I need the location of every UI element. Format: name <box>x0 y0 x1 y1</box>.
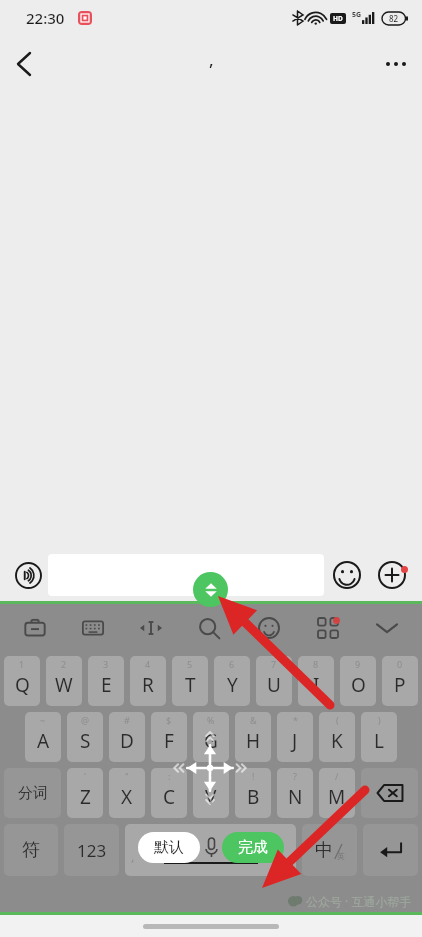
button[interactable]: & <box>235 712 271 762</box>
button[interactable]: " <box>109 768 145 818</box>
button[interactable]: ; <box>193 768 229 818</box>
staticText: M <box>328 784 346 810</box>
staticText: G <box>204 728 218 754</box>
button[interactable]: # <box>109 712 145 762</box>
staticText: / <box>335 770 339 782</box>
staticText: N <box>288 784 303 810</box>
staticText: $ <box>166 714 172 726</box>
staticText: T <box>185 672 196 698</box>
staticText: X <box>121 784 133 810</box>
button[interactable]: Resize keyboard <box>193 572 228 607</box>
button[interactable]: ) <box>361 712 397 762</box>
staticText: 7 <box>271 658 277 670</box>
button[interactable]: 符 <box>4 824 58 876</box>
button[interactable]: Switch Chinese English <box>302 824 357 876</box>
staticText: W <box>55 672 73 698</box>
button[interactable]: ' <box>67 768 103 818</box>
staticText: F <box>164 728 174 754</box>
button[interactable]: More functions <box>370 553 414 597</box>
staticText: B <box>247 784 260 810</box>
staticText: 5 <box>187 658 193 670</box>
button[interactable]: 2 <box>46 656 82 706</box>
button[interactable]: Back <box>0 40 48 88</box>
staticText: 英 <box>337 851 345 861</box>
button[interactable]: 4 <box>130 656 166 706</box>
staticText: 符 <box>22 839 40 862</box>
staticText: " <box>125 770 129 782</box>
button[interactable]: More options <box>370 38 422 90</box>
button[interactable]: Space <box>125 824 296 876</box>
button[interactable]: 123 <box>64 824 119 876</box>
staticText: , <box>131 847 135 865</box>
staticText: O <box>351 672 366 698</box>
button[interactable]: 6 <box>214 656 250 706</box>
staticText: Q <box>15 672 30 698</box>
button[interactable]: Collapse <box>357 604 416 652</box>
staticText: U <box>267 672 281 698</box>
button[interactable]: 8 <box>298 656 334 706</box>
button[interactable]: 0 <box>382 656 418 706</box>
staticText: ' <box>84 770 87 782</box>
button[interactable]: Enter <box>363 824 418 876</box>
staticText: A <box>37 728 50 754</box>
button[interactable]: $ <box>151 712 187 762</box>
staticText: P <box>394 672 406 698</box>
staticText: 22:30 <box>26 8 65 28</box>
staticText: S <box>80 728 91 754</box>
staticText: 6 <box>229 658 235 670</box>
button[interactable]: @ <box>67 712 103 762</box>
staticText: ~ <box>40 714 46 726</box>
button[interactable]: % <box>193 712 229 762</box>
button[interactable]: 分词 <box>4 768 61 818</box>
button[interactable]: 完成 <box>222 832 284 863</box>
button[interactable]: : <box>151 768 187 818</box>
button[interactable]: 9 <box>340 656 376 706</box>
button[interactable]: ! <box>235 768 271 818</box>
staticText: Z <box>80 784 91 810</box>
staticText: * <box>293 714 298 726</box>
button[interactable]: 1 <box>4 656 40 706</box>
staticText: # <box>124 714 130 726</box>
button[interactable]: Move cursor <box>122 604 180 652</box>
staticText: 分词 <box>18 784 48 803</box>
staticText: V <box>205 784 217 810</box>
button[interactable]: ? <box>277 768 313 818</box>
button[interactable]: ~ <box>25 712 61 762</box>
staticText: 。 <box>279 848 292 864</box>
button[interactable]: 5 <box>172 656 208 706</box>
button[interactable]: Search <box>180 604 239 652</box>
staticText: ( <box>336 714 339 726</box>
staticText: 123 <box>77 839 107 862</box>
button[interactable]: Keyboard layout <box>64 604 122 652</box>
button[interactable]: 3 <box>88 656 124 706</box>
staticText: 3 <box>103 658 109 670</box>
staticText: E <box>101 672 112 698</box>
button[interactable]: Stickers <box>239 604 298 652</box>
button[interactable]: Clipboard <box>6 604 64 652</box>
staticText: : <box>168 770 171 782</box>
staticText: 默认 <box>154 838 184 857</box>
button[interactable]: Emoji <box>324 552 370 598</box>
staticText: 9 <box>355 658 361 670</box>
staticText: & <box>250 714 257 726</box>
staticText: ) <box>378 714 381 726</box>
staticText: 5G <box>352 10 362 20</box>
button[interactable] <box>48 554 324 596</box>
staticText: L <box>374 728 384 754</box>
staticText: J <box>292 728 298 754</box>
staticText: R <box>142 672 154 698</box>
staticText: ! <box>252 770 255 782</box>
staticText: @ <box>81 714 90 726</box>
staticText: % <box>207 714 215 726</box>
button[interactable]: / <box>319 768 355 818</box>
button[interactable]: More tools <box>298 604 357 652</box>
button[interactable]: 7 <box>256 656 292 706</box>
button[interactable]: Backspace <box>361 768 418 818</box>
button[interactable]: ( <box>319 712 355 762</box>
staticText: ; <box>210 770 213 782</box>
staticText: 0 <box>397 658 403 670</box>
staticText: Y <box>227 672 238 698</box>
button[interactable]: * <box>277 712 313 762</box>
button[interactable]: Voice input <box>8 555 48 595</box>
button[interactable]: 默认 <box>138 832 200 863</box>
